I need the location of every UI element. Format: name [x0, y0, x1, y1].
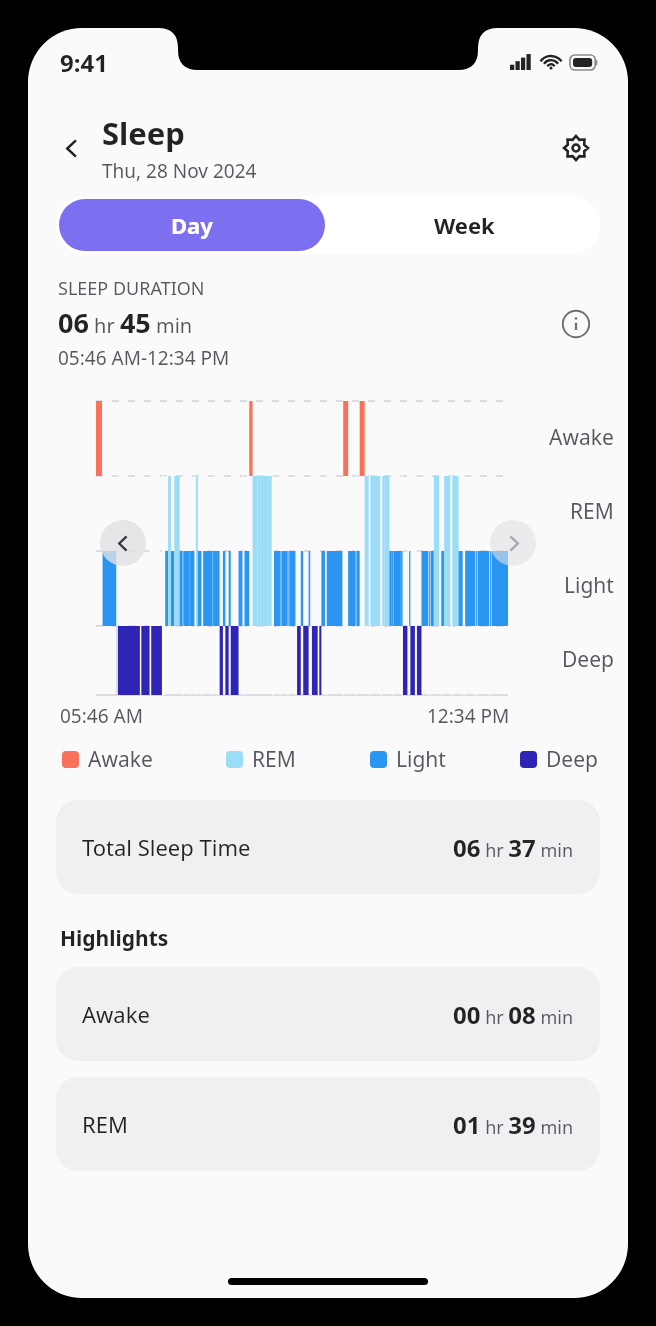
staticText: Awake — [82, 999, 150, 1029]
staticText: 9:41 — [60, 46, 108, 79]
staticText: 06 hr 37 min — [453, 831, 574, 864]
staticText: Light — [564, 571, 614, 600]
staticText: 00 hr 08 min — [453, 998, 574, 1031]
staticText: Deep — [546, 745, 598, 774]
button[interactable]: Awake — [56, 967, 600, 1061]
staticText: REM — [252, 745, 296, 774]
button[interactable]: Week — [328, 196, 600, 254]
button[interactable]: REM — [56, 1077, 600, 1171]
staticText: Awake — [549, 423, 614, 452]
staticText: 01 hr 39 min — [453, 1108, 574, 1141]
staticText: 05:46 AM — [60, 703, 143, 729]
staticText: 12:34 PM — [427, 703, 510, 729]
staticText: Day — [171, 210, 213, 240]
button[interactable]: Back — [50, 126, 94, 170]
staticText: Light — [396, 745, 446, 774]
staticText: Total Sleep Time — [82, 832, 251, 862]
staticText: Deep — [562, 645, 614, 674]
button[interactable]: Total Sleep Time — [56, 800, 600, 894]
staticText: SLEEP DURATION — [58, 276, 205, 301]
staticText: Week — [434, 210, 495, 240]
staticText: 05:46 AM-12:34 PM — [58, 345, 230, 371]
button[interactable]: Information — [554, 302, 598, 346]
staticText: REM — [82, 1109, 128, 1139]
staticText: REM — [570, 497, 614, 526]
button[interactable]: Day — [59, 199, 325, 251]
staticText: 06 hr 45 min — [58, 304, 193, 341]
staticText: Awake — [88, 745, 153, 774]
staticText: Sleep — [102, 112, 185, 154]
staticText: Highlights — [60, 924, 169, 953]
button[interactable]: Settings — [552, 124, 600, 172]
button[interactable]: Previous day — [100, 520, 146, 566]
button[interactable]: Next day — [490, 520, 536, 566]
staticText: Thu, 28 Nov 2024 — [102, 158, 257, 184]
